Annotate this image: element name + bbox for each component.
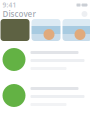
button[interactable]: Desert trip — [62, 19, 90, 41]
button[interactable]: Beach trip — [31, 19, 60, 41]
button[interactable]: Forest trip — [0, 19, 29, 41]
staticText: Discover — [2, 9, 35, 19]
button[interactable]: Trip entry — [0, 48, 90, 71]
button[interactable]: Trip entry — [0, 84, 90, 107]
button[interactable]: Profile — [81, 11, 87, 17]
staticText: 9:41 — [2, 1, 16, 9]
